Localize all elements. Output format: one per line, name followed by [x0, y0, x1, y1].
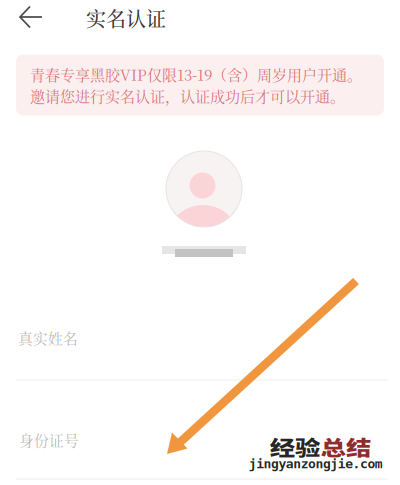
- button[interactable]: 返回: [5, 0, 57, 37]
- staticText: 总结: [320, 432, 360, 461]
- staticText: jingyanzongjie.com: [252, 457, 378, 471]
- staticText: 邀请您进行实名认证，认证成功后才可以开通。: [30, 85, 345, 107]
- staticText: 青春专享黑胶VIP仅限13-19（含）周岁用户开通。: [30, 63, 362, 85]
- staticText: 身份证号: [19, 429, 79, 451]
- staticText: 实名认证: [86, 4, 166, 32]
- staticText: 真实姓名: [18, 327, 78, 349]
- staticText: 经验: [280, 432, 320, 461]
